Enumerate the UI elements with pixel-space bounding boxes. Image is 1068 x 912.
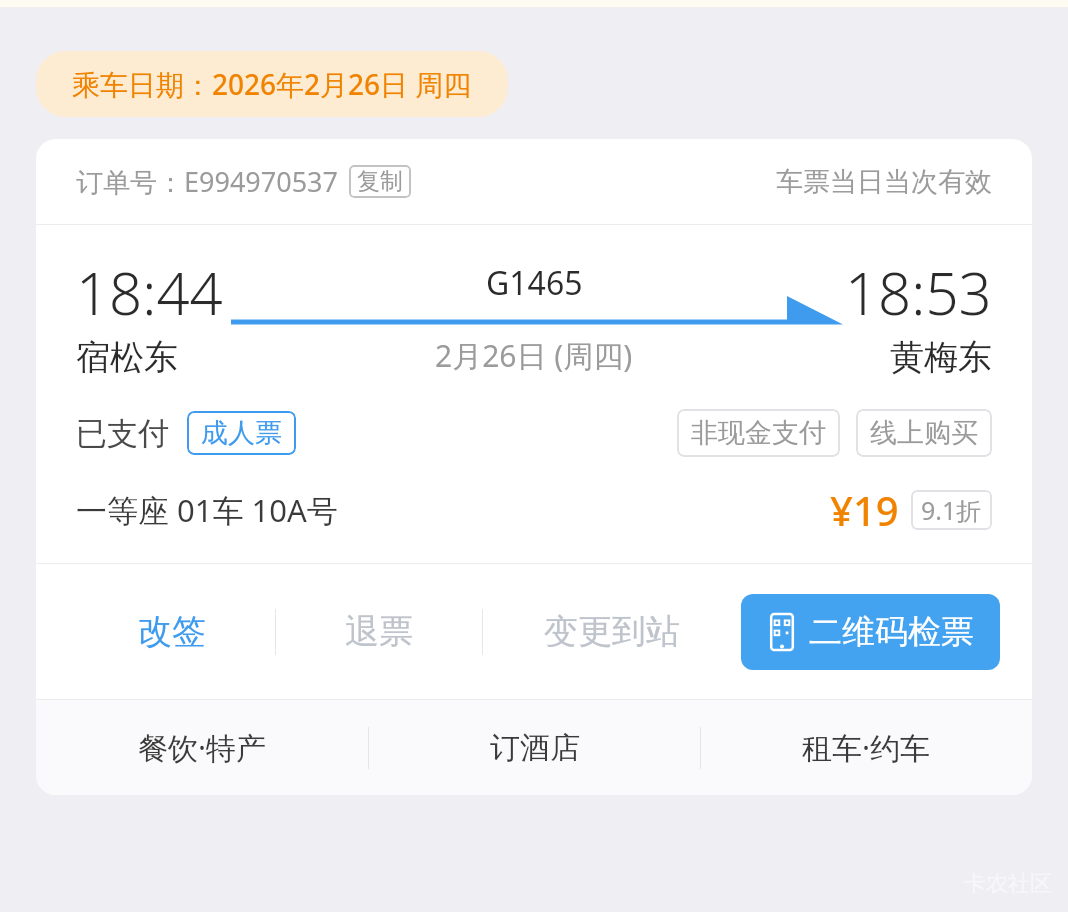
button[interactable]: 变更到站 [483,564,741,699]
staticText: 租车·约车 [802,727,931,768]
staticText: 已支付 [76,414,169,453]
button[interactable]: 租车·约车 [701,700,1032,795]
staticText: 9.1折 [921,493,982,527]
staticText: 宿松东 [76,336,178,379]
staticText: 订单号：E994970537 [76,163,339,200]
button[interactable]: 成人票 [187,411,296,455]
staticText: G1465 [486,261,583,305]
staticText: 变更到站 [544,610,680,653]
staticText: 2月26日 (周四) [435,335,633,376]
button[interactable]: 退票 [276,564,482,699]
staticText: 订酒店 [490,729,580,767]
staticText: 复制 [357,167,403,196]
button[interactable]: 非现金支付 [677,409,840,457]
staticText: 退票 [345,610,413,653]
button[interactable]: 改签 [68,564,275,699]
button[interactable]: 二维码检票 [741,594,1000,670]
staticText: ¥19 [830,483,899,537]
staticText: 一等座 01车 10A号 [76,489,338,531]
staticText: 成人票 [201,416,282,450]
staticText: 非现金支付 [691,416,826,450]
staticText: 18:44 [76,253,223,332]
staticText: 线上购买 [870,416,978,450]
staticText: 车票当日当次有效 [776,165,992,199]
button[interactable]: 线上购买 [856,409,992,457]
button[interactable]: 订酒店 [369,700,700,795]
staticText: 黄梅东 [890,336,992,379]
button[interactable]: 复制 [349,165,411,198]
button[interactable]: 乘车日期：2026年2月26日 周四 [36,51,508,117]
button[interactable]: 餐饮·特产 [36,700,368,795]
staticText: 改签 [138,610,206,653]
staticText: 18:53 [845,253,992,332]
staticText: 餐饮·特产 [138,727,267,768]
staticText: 二维码检票 [809,611,974,653]
staticText: 乘车日期：2026年2月26日 周四 [72,65,472,103]
